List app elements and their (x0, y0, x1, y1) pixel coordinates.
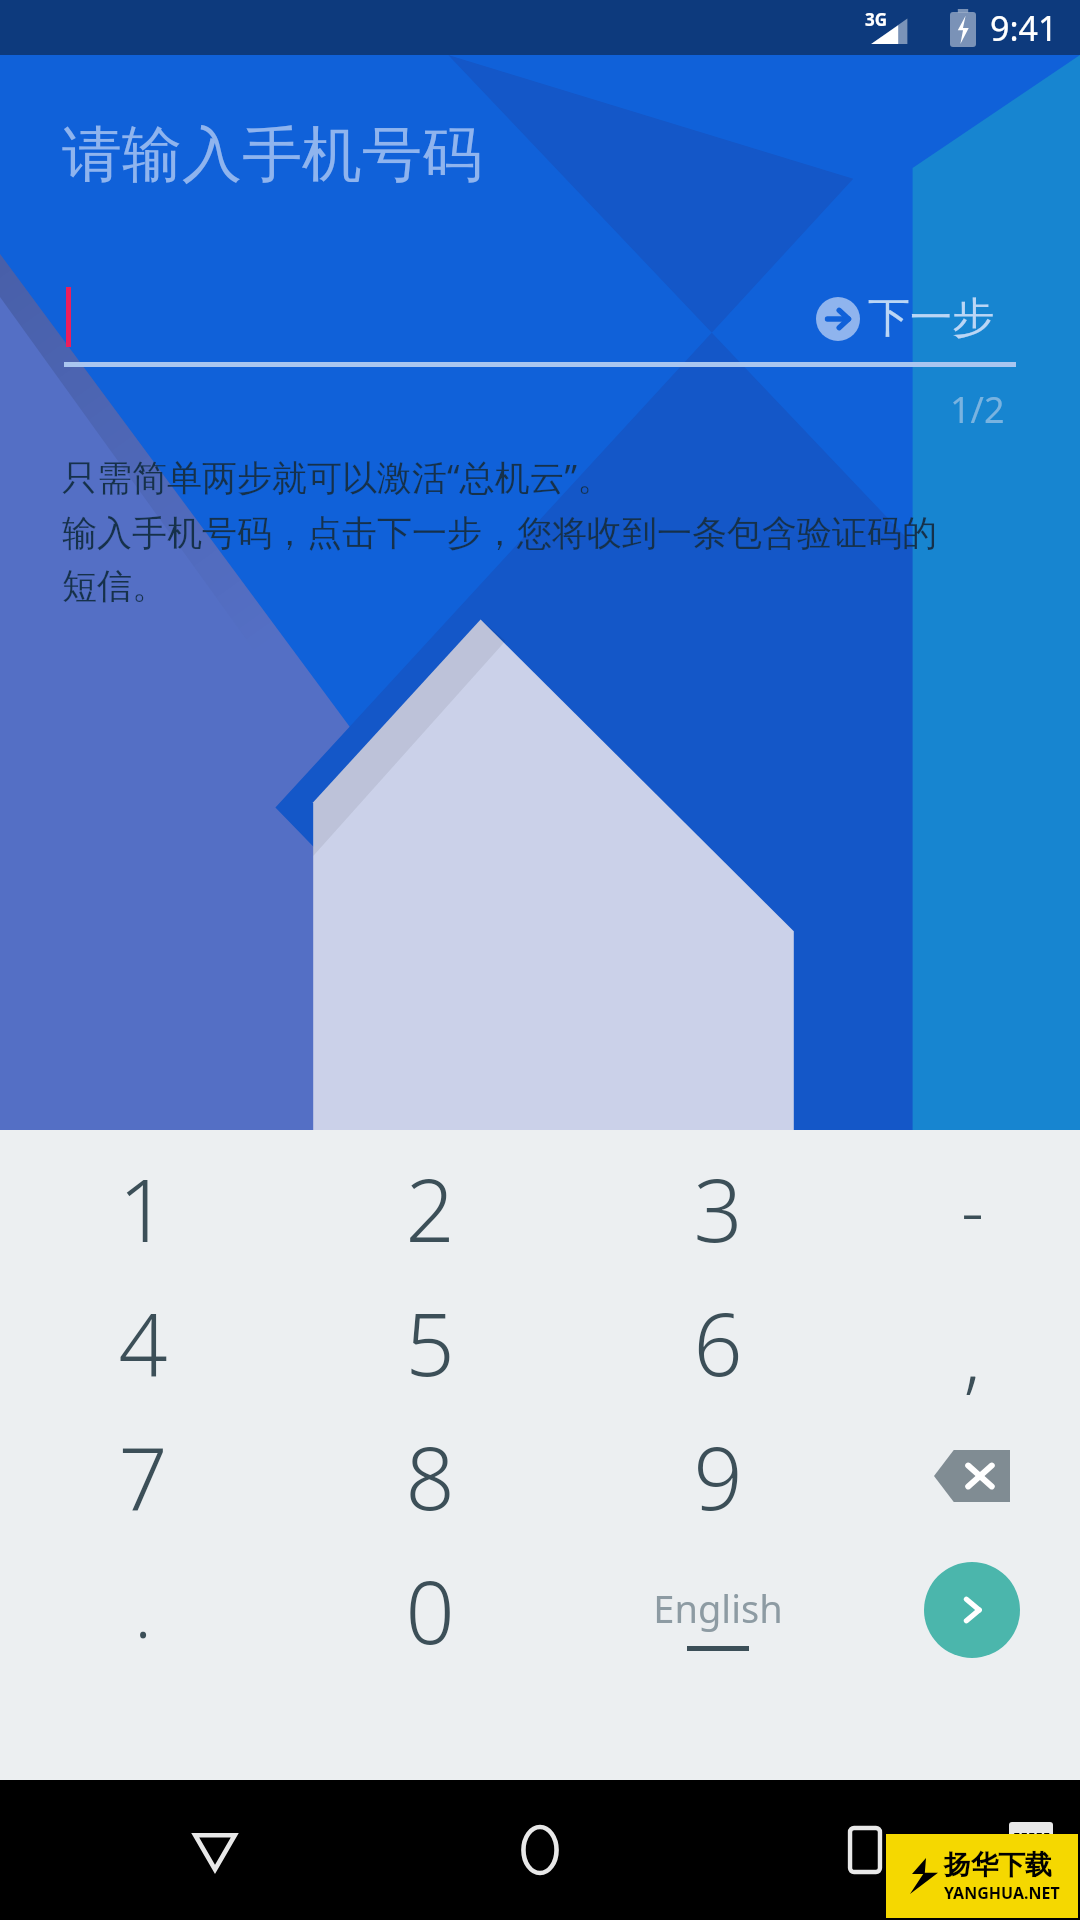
staticText: 8 (405, 1418, 455, 1535)
button[interactable]: Enter (924, 1562, 1020, 1658)
staticText: 6 (693, 1284, 743, 1401)
button[interactable]: 1 (53, 1148, 233, 1268)
button[interactable]: Backspace (920, 1442, 1024, 1510)
staticText: . (134, 1563, 152, 1658)
button[interactable]: 6 (628, 1282, 808, 1402)
staticText: 9 (693, 1418, 743, 1535)
button[interactable]: 3 (628, 1148, 808, 1268)
button[interactable]: Back (175, 1810, 255, 1890)
staticText: 1 (118, 1150, 168, 1267)
staticText: YANGHUA.NET (944, 1882, 1060, 1904)
button[interactable]: 4 (53, 1282, 233, 1402)
staticText: English (653, 1582, 783, 1634)
button[interactable]: 下一步 (812, 288, 998, 349)
button[interactable]: 8 (340, 1416, 520, 1536)
button[interactable]: Recent apps (825, 1810, 905, 1890)
staticText: 只需简单两步就可以激活“总机云”。 (62, 453, 613, 501)
staticText: 3G (865, 8, 888, 31)
staticText: 请输入手机号码 (62, 117, 482, 193)
staticText: 7 (118, 1418, 168, 1535)
button[interactable]: Home (500, 1810, 580, 1890)
button[interactable]: - (882, 1148, 1062, 1268)
button[interactable]: 9 (628, 1416, 808, 1536)
staticText: 4 (118, 1284, 168, 1401)
staticText: - (961, 1161, 984, 1256)
staticText: , (963, 1304, 981, 1408)
staticText: 3 (693, 1150, 743, 1267)
button[interactable]: , (882, 1296, 1062, 1416)
button[interactable]: Switch keyboard (1000, 1816, 1062, 1878)
button[interactable]: 5 (340, 1282, 520, 1402)
staticText: 9:41 (990, 5, 1058, 51)
button[interactable]: 7 (53, 1416, 233, 1536)
staticText: 输入手机号码，点击下一步，您将收到一条包含验证码的 短信。 (62, 511, 1022, 609)
staticText: 5 (405, 1284, 455, 1401)
staticText: 0 (405, 1552, 455, 1669)
staticText: 扬华下载 (944, 1848, 1052, 1882)
button[interactable]: 2 (340, 1148, 520, 1268)
staticText: 2 (405, 1150, 455, 1267)
staticText: 1/2 (950, 385, 1005, 434)
button[interactable]: English (608, 1568, 828, 1664)
button[interactable]: . (53, 1550, 233, 1670)
staticText: 下一步 (868, 292, 994, 345)
button[interactable]: 0 (340, 1550, 520, 1670)
